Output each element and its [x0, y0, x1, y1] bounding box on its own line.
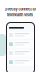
staticText: telehealth visits: [7, 13, 33, 17]
button[interactable]: [7, 59, 34, 66]
button[interactable]: [7, 41, 34, 48]
button[interactable]: [7, 32, 34, 39]
button[interactable]: [7, 50, 34, 57]
staticText: Directly connect to: [4, 7, 35, 11]
